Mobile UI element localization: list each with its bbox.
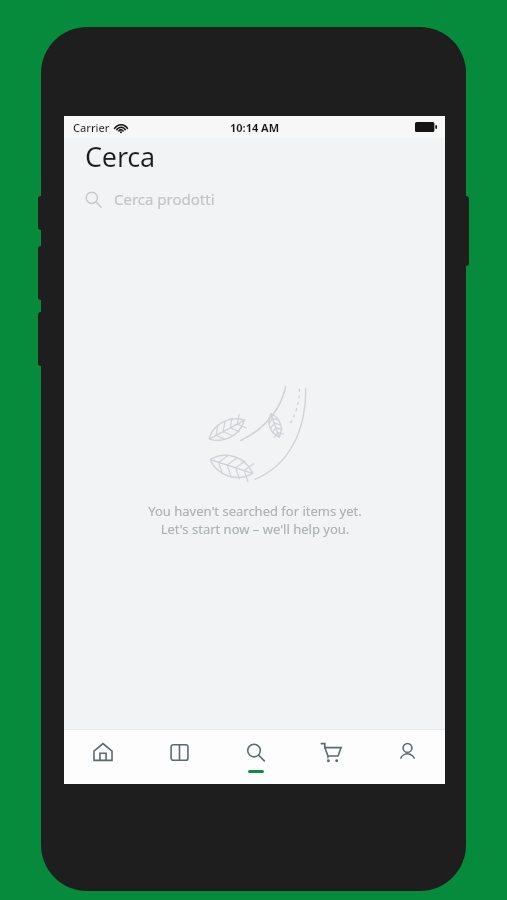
button[interactable]: Search — [217, 730, 293, 784]
button[interactable]: Profile — [369, 730, 445, 784]
button[interactable]: Catalog — [141, 730, 217, 784]
staticText: Carrier — [73, 120, 110, 135]
staticText: Cerca — [85, 138, 156, 175]
button[interactable]: Cerca prodotti — [85, 186, 424, 212]
button[interactable]: Home — [64, 730, 141, 784]
staticText: You haven't searched for items yet. Let'… — [148, 502, 362, 538]
button[interactable]: Cart — [293, 730, 369, 784]
staticText: Cerca prodotti — [114, 189, 215, 209]
staticText: 10:14 AM — [230, 120, 280, 135]
